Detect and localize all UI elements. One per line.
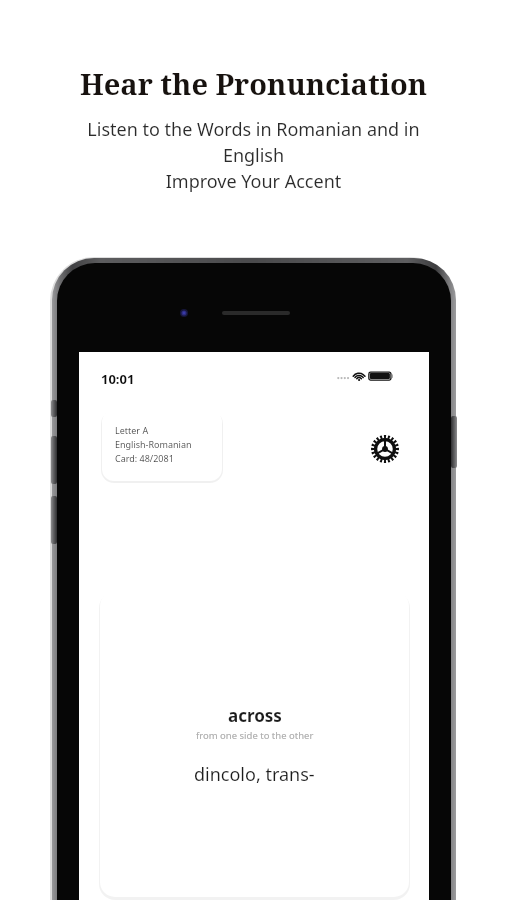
- staticText: Hear the Pronunciation: [0, 64, 507, 103]
- staticText: Listen to the Words in Romanian and in E…: [0, 117, 507, 194]
- staticText: dincolo, trans-: [194, 762, 315, 787]
- button[interactable]: across: [100, 591, 409, 897]
- button[interactable]: Settings: [367, 431, 403, 467]
- staticText: across: [228, 704, 282, 727]
- staticText: Card: 48/2081: [115, 452, 174, 464]
- staticText: Letter A: [115, 424, 149, 436]
- staticText: 10:01: [101, 370, 135, 388]
- button[interactable]: Letter A: [102, 410, 222, 481]
- staticText: English-Romanian: [115, 438, 192, 450]
- staticText: from one side to the other: [196, 729, 314, 742]
